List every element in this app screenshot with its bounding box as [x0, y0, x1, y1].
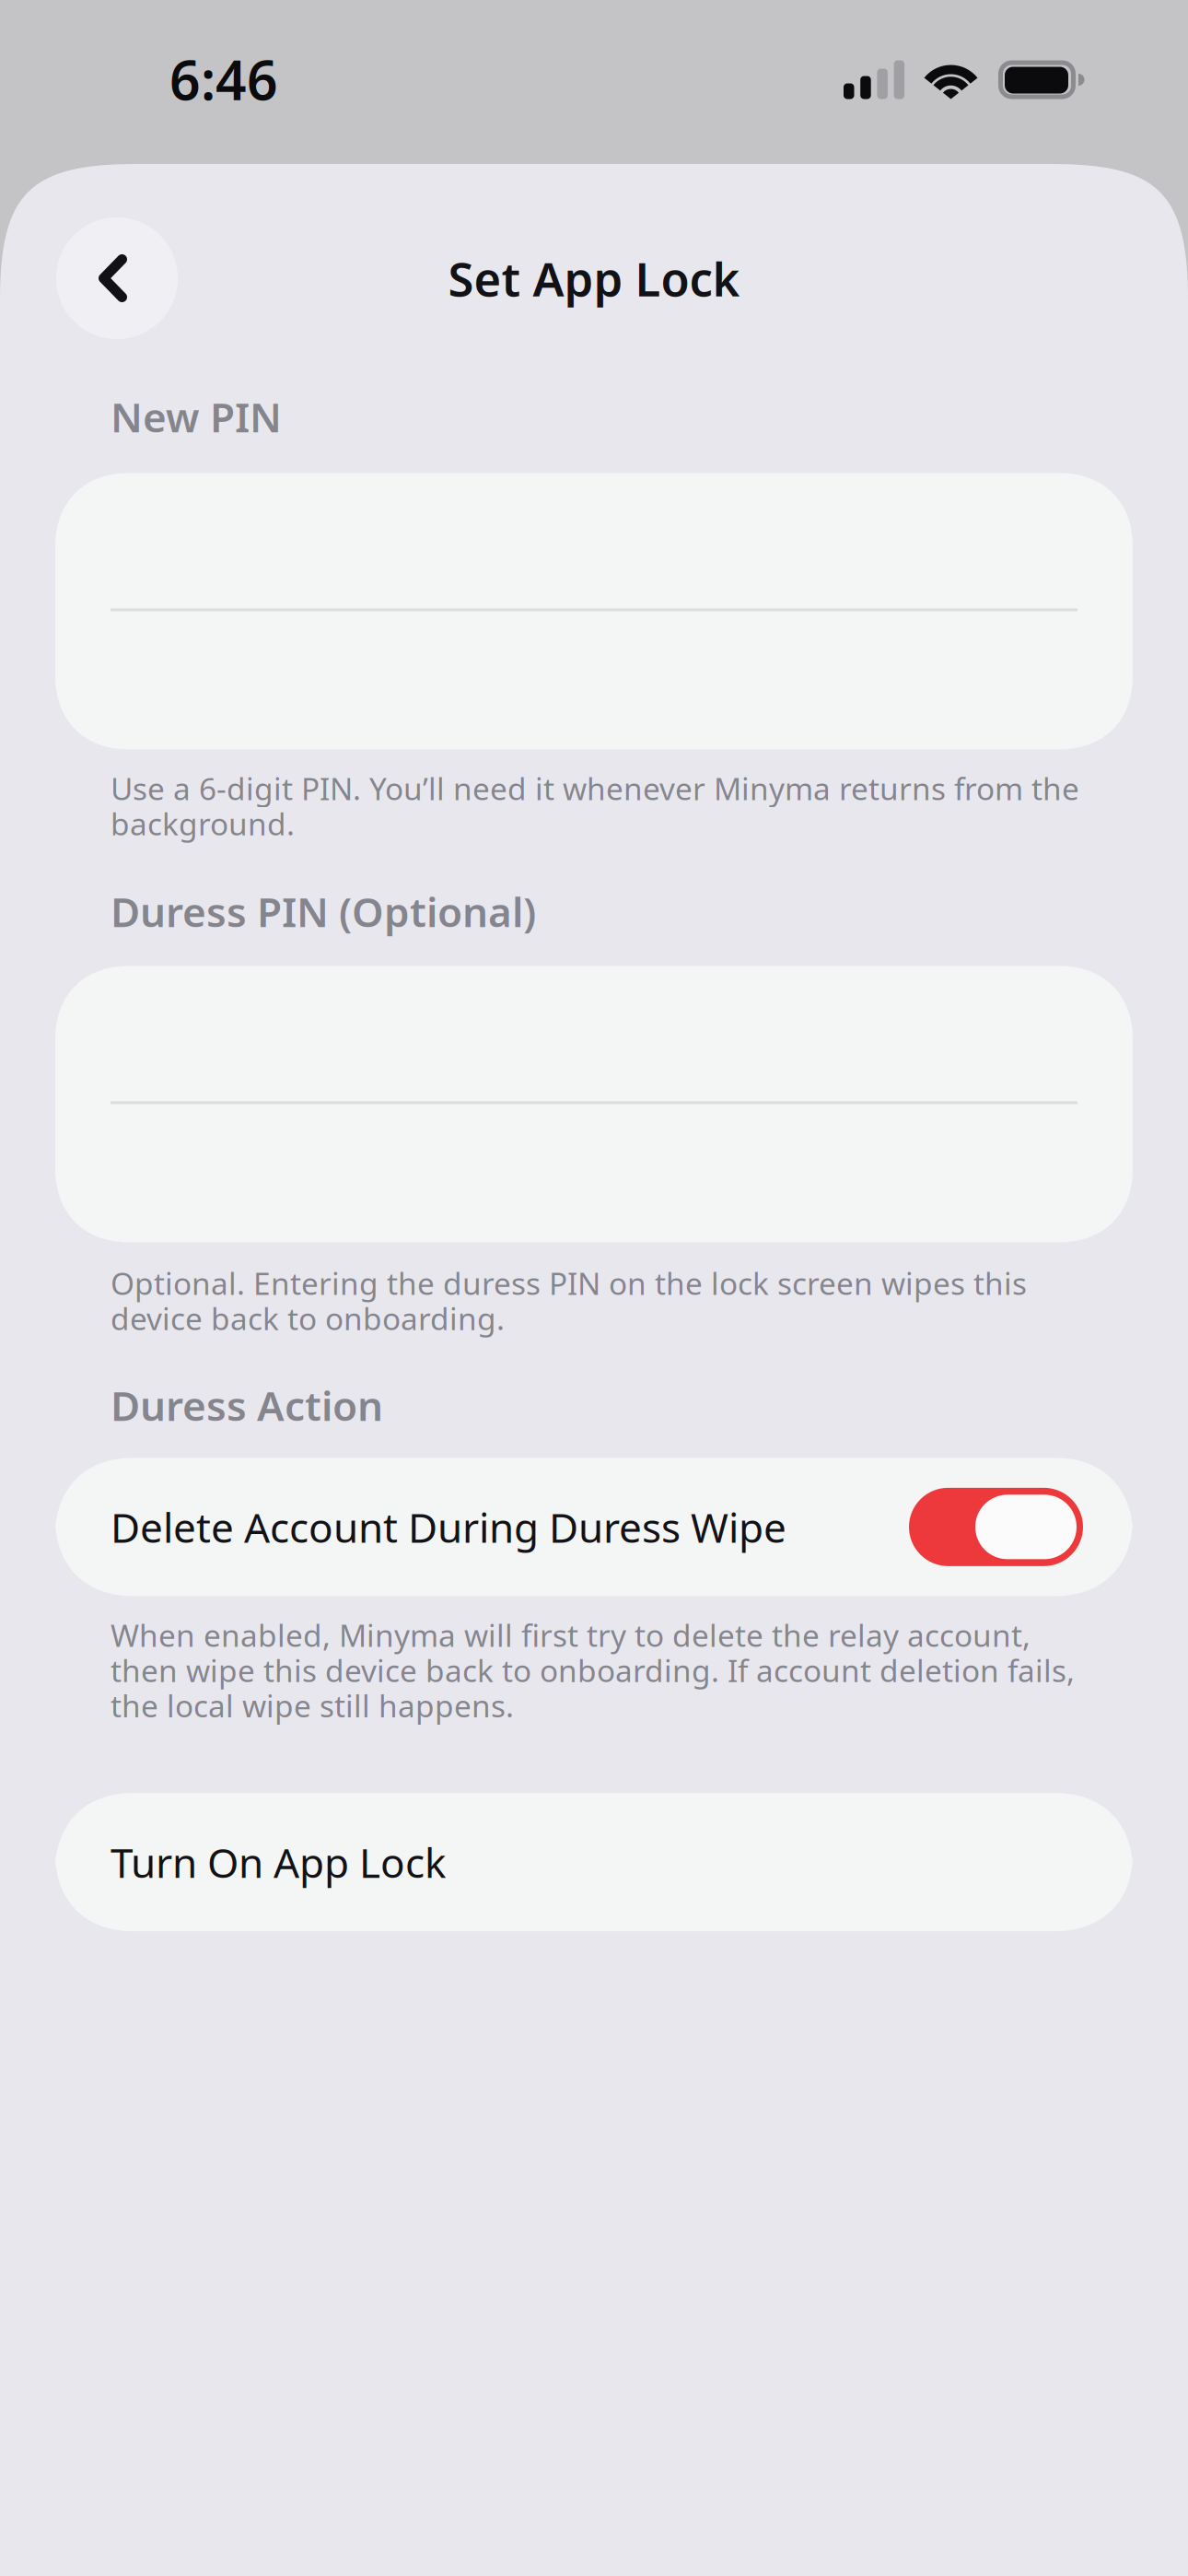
button[interactable]: Back	[56, 217, 178, 339]
staticText: Set App Lock	[448, 247, 740, 309]
staticText: Duress Action	[111, 1378, 383, 1432]
staticText: Duress PIN (Optional)	[111, 884, 536, 938]
staticText: New PIN	[111, 390, 282, 444]
staticText: When enabled, Minyma will first try to d…	[111, 1614, 1075, 1726]
staticText: Use a 6-digit PIN. You’ll need it whenev…	[111, 768, 1079, 844]
staticText: Delete Account During Duress Wipe	[111, 1500, 786, 1554]
button[interactable]: Turn On App Lock	[0, 1793, 1188, 1931]
button[interactable]: Delete Account During Duress Wipe	[0, 1458, 1188, 1596]
staticText: 6:46	[169, 43, 278, 115]
staticText: Turn On App Lock	[111, 1835, 446, 1889]
staticText: Optional. Entering the duress PIN on the…	[111, 1263, 1027, 1339]
